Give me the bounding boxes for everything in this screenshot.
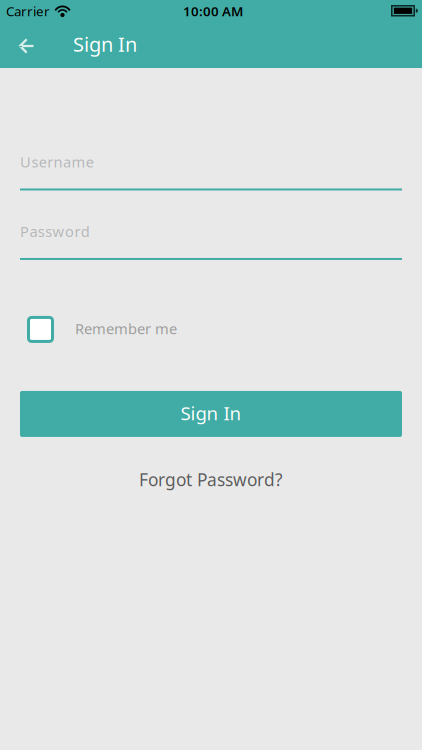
staticText: Forgot Password? [139, 468, 283, 491]
button[interactable]: Username [20, 152, 402, 190]
staticText: Sign In [180, 401, 241, 425]
button[interactable]: Forgot Password? [139, 468, 283, 491]
staticText: Username [20, 152, 94, 171]
button[interactable]: Sign In [20, 391, 402, 437]
staticText: Password [20, 221, 90, 241]
staticText: Sign In [73, 31, 137, 57]
button[interactable]: Remember me [20, 316, 177, 343]
staticText: Carrier [6, 2, 50, 20]
staticText: Remember me [75, 319, 177, 338]
button[interactable]: Password [20, 221, 402, 260]
staticText: 10:00 AM [183, 2, 243, 20]
button[interactable]: Back [0, 24, 44, 68]
